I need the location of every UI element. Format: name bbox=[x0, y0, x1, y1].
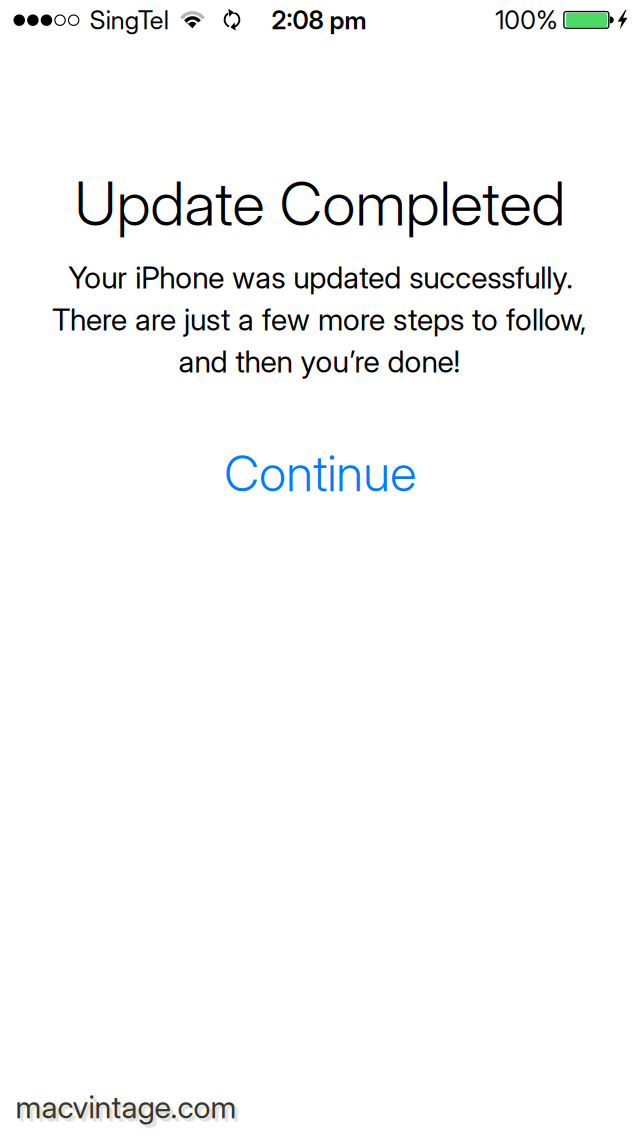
staticText: macvintage.com bbox=[16, 1089, 237, 1126]
staticText: macvintage.com bbox=[17, 1090, 238, 1127]
staticText: and then you’re done! bbox=[178, 343, 460, 380]
staticText: There are just a few more steps to follo… bbox=[52, 301, 587, 338]
staticText: Your iPhone was updated successfully. bbox=[68, 259, 573, 296]
staticText: SingTel bbox=[90, 5, 169, 35]
staticText: 100% bbox=[495, 5, 557, 35]
staticText: Update Completed bbox=[74, 167, 565, 240]
staticText: Continue bbox=[224, 443, 416, 503]
staticText: 2:08 pm bbox=[271, 5, 366, 35]
button[interactable]: Continue bbox=[170, 429, 470, 517]
staticText: macvintage.com bbox=[18, 1091, 239, 1128]
staticText: macvintage.com bbox=[20, 1093, 241, 1130]
